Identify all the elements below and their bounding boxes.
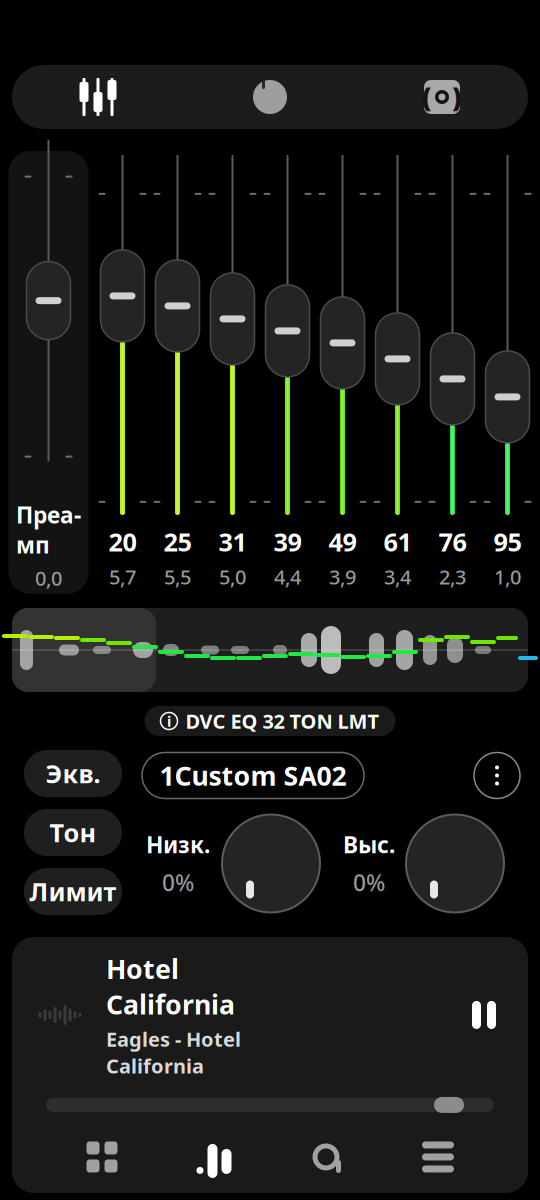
button[interactable]: Лимит <box>24 868 122 915</box>
button[interactable]: Equalizer <box>12 65 184 129</box>
staticText: 5,5 <box>164 563 191 590</box>
staticText: Eagles - Hotel California <box>106 1026 241 1079</box>
staticText: 1Custom SA02 <box>159 758 346 793</box>
button[interactable]: Tone knob <box>184 65 356 129</box>
staticText: 61 <box>383 525 411 558</box>
staticText: 0,0 <box>35 565 62 591</box>
button[interactable] <box>483 155 531 515</box>
button[interactable]: Playlists <box>382 1129 494 1185</box>
button[interactable]: Equalizer <box>158 1129 270 1185</box>
button[interactable]: 1Custom SA02 <box>142 752 364 798</box>
button[interactable]: i <box>144 706 395 736</box>
button[interactable] <box>373 155 421 515</box>
staticText: Экв. <box>45 757 100 790</box>
button[interactable]: Экв. <box>24 750 122 797</box>
button[interactable] <box>318 155 366 515</box>
staticText: 5,7 <box>109 563 136 590</box>
staticText: 4,4 <box>274 563 301 590</box>
staticText: DVC EQ 32 TON LMT <box>185 708 379 734</box>
staticText: Низк. <box>146 829 210 859</box>
staticText: 31 <box>218 525 246 558</box>
staticText: 5,0 <box>219 563 246 590</box>
staticText: ) <box>452 79 462 115</box>
staticText: 76 <box>438 525 466 558</box>
button[interactable]: Search <box>270 1129 382 1185</box>
staticText: 20 <box>108 525 136 558</box>
button[interactable]: Library <box>46 1129 158 1185</box>
button[interactable]: Тон <box>24 809 122 856</box>
staticText: 3,4 <box>384 563 411 590</box>
button[interactable]: Bass level <box>222 814 320 912</box>
staticText: 1,0 <box>494 563 521 590</box>
staticText: Выс. <box>343 829 395 859</box>
button[interactable] <box>263 155 311 515</box>
staticText: 95 <box>493 525 521 558</box>
button[interactable] <box>98 155 146 515</box>
staticText: ( <box>422 79 432 115</box>
staticText: 49 <box>328 525 356 558</box>
staticText: 25 <box>163 525 191 558</box>
staticText: 3,9 <box>329 563 356 590</box>
button[interactable]: Pause <box>464 998 504 1032</box>
button[interactable]: Output device <box>356 65 528 129</box>
button[interactable] <box>153 155 201 515</box>
staticText: 0% <box>162 867 194 898</box>
button[interactable] <box>428 155 476 515</box>
button[interactable]: Treble level <box>406 814 504 912</box>
staticText: 39 <box>273 525 301 558</box>
button[interactable]: More options <box>474 752 520 798</box>
staticText: 2,3 <box>439 563 466 590</box>
staticText: i <box>167 711 171 731</box>
button[interactable] <box>208 155 256 515</box>
staticText: Тон <box>49 816 96 849</box>
staticText: Hotel California <box>106 951 235 1022</box>
staticText: Лимит <box>29 875 116 908</box>
staticText: Преамп <box>16 500 81 560</box>
staticText: 0% <box>353 867 385 898</box>
